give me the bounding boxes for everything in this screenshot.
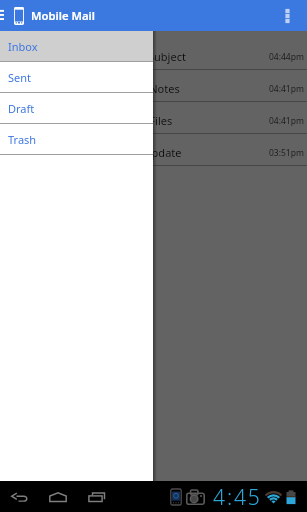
- button[interactable]: Trash: [0, 124, 153, 155]
- staticText: 04:41pm: [269, 83, 304, 95]
- staticText: Inbox: [8, 39, 38, 54]
- button[interactable]: More options: [276, 0, 298, 31]
- staticText: Requested documents and Files: [8, 113, 269, 128]
- button[interactable]: Home: [41, 481, 74, 512]
- button[interactable]: A Summary of the Meeting Notes: [0, 70, 307, 102]
- staticText: Here is the weekly Project Update: [8, 145, 269, 160]
- staticText: A Summary of the Meeting Notes: [8, 81, 269, 96]
- staticText: Mobile Mail: [31, 8, 95, 23]
- staticText: Trash: [8, 132, 37, 147]
- button[interactable]: Draft: [0, 93, 153, 124]
- button[interactable]: Open navigation drawer: [0, 0, 4, 31]
- button[interactable]: Re: An Important Message Subject: [0, 38, 307, 70]
- staticText: 04:41pm: [269, 115, 304, 127]
- button[interactable]: Here is the weekly Project Update: [0, 134, 307, 166]
- staticText: Re: An Important Message Subject: [8, 49, 269, 64]
- button[interactable]: Back: [3, 481, 36, 512]
- button[interactable]: Sent: [0, 62, 153, 93]
- button[interactable]: Requested documents and Files: [0, 102, 307, 134]
- staticText: Sent: [8, 70, 32, 85]
- button[interactable]: Recent apps: [80, 481, 113, 512]
- staticText: 4:45: [213, 483, 262, 512]
- staticText: Draft: [8, 101, 35, 116]
- staticText: 03:51pm: [269, 147, 304, 159]
- staticText: 04:44pm: [269, 51, 304, 63]
- button[interactable]: Inbox: [0, 31, 153, 62]
